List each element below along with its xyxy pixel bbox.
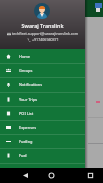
staticText: Home [19,54,31,59]
staticText: +917406940371 [32,37,59,42]
staticText: Expenses [19,125,37,130]
staticText: Groups [19,68,33,73]
button[interactable]: Recent apps [84,169,97,182]
staticText: Notifications [19,82,43,87]
staticText: POI List [19,111,34,116]
button[interactable]: Notifications [0,77,85,91]
staticText: techfleet.support@swarajtranslink.com [12,31,79,36]
staticText: Fuel [19,153,27,158]
button[interactable]: POI List [0,106,85,120]
staticText: Swaraj Translink [0,22,85,29]
staticText: Your Trips [19,97,38,102]
button[interactable]: Home [0,49,85,63]
button[interactable]: Your Trips [0,92,85,106]
button[interactable]: Swaraj Translink [0,0,85,49]
button[interactable]: Home [45,169,58,182]
button[interactable]: Fuel [0,148,85,162]
button[interactable]: Groups [0,63,85,77]
button[interactable]: Back [19,169,32,182]
staticText: Fueling [19,139,33,144]
button[interactable]: Fueling [0,134,85,148]
button[interactable]: Expenses [0,120,85,134]
